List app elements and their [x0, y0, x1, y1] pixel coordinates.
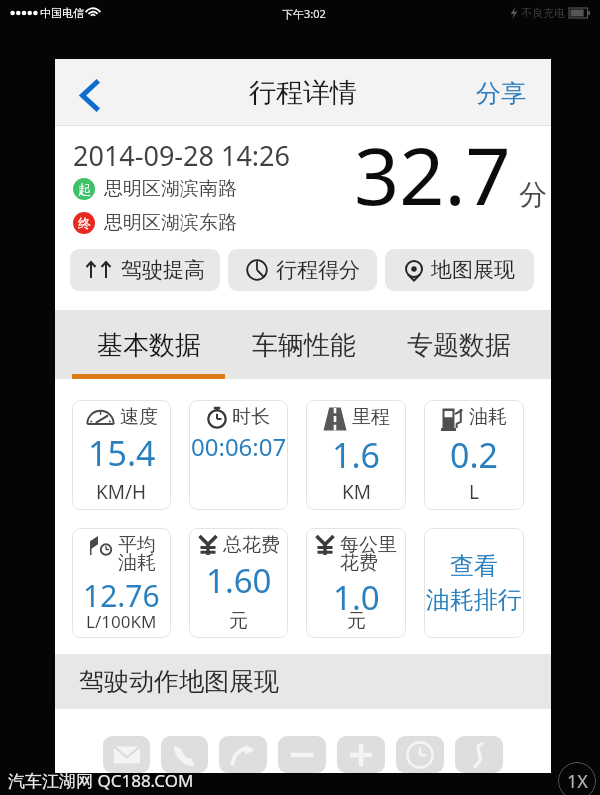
button[interactable]: Back: [67, 73, 111, 117]
button[interactable]: Minus: [278, 736, 326, 773]
staticText: 时长: [232, 405, 270, 429]
button[interactable]: Plus: [337, 736, 385, 773]
staticText: 中国电信: [40, 6, 84, 20]
button[interactable]: 驾驶提高: [70, 249, 220, 291]
staticText: 驾驶提高: [121, 257, 205, 283]
staticText: 下午3:02: [282, 6, 326, 21]
button[interactable]: 车辆性能: [226, 310, 381, 379]
staticText: 终: [78, 215, 91, 231]
staticText: 每公里 花费: [340, 533, 397, 574]
staticText: 驾驶动作地图展现: [79, 666, 279, 697]
staticText: 1X: [567, 769, 588, 794]
button[interactable]: Share: [219, 736, 267, 773]
staticText: 行程得分: [276, 257, 360, 283]
button[interactable]: 总花费: [189, 528, 288, 638]
button[interactable]: 专题数据: [381, 310, 536, 379]
staticText: 思明区湖滨东路: [104, 211, 237, 235]
button[interactable]: 分享: [468, 70, 534, 117]
staticText: 速度: [120, 405, 158, 429]
staticText: 15.4: [88, 430, 156, 476]
staticText: 元: [229, 609, 248, 633]
button[interactable]: 速度: [72, 400, 171, 510]
staticText: 00:06:07: [191, 430, 287, 463]
button[interactable]: 查看 油耗排行: [424, 528, 524, 638]
staticText: 起: [78, 181, 91, 197]
staticText: 地图展现: [431, 257, 515, 283]
button[interactable]: 里程: [306, 400, 406, 510]
staticText: 查看 油耗排行: [426, 551, 522, 616]
staticText: 元: [347, 609, 366, 633]
staticText: 总花费: [223, 533, 280, 557]
staticText: 1.0: [333, 575, 380, 620]
button[interactable]: Message: [103, 736, 150, 773]
staticText: 专题数据: [407, 329, 511, 362]
staticText: 1.6: [332, 432, 381, 478]
staticText: 0.2: [450, 432, 499, 478]
staticText: 2014-09-28 14:26: [73, 137, 290, 174]
staticText: 思明区湖滨南路: [104, 177, 237, 201]
staticText: 32.7: [354, 121, 511, 229]
button[interactable]: Clock: [396, 736, 444, 773]
staticText: 汽车江湖网 QC188.COM: [8, 769, 194, 792]
staticText: 不良充电: [521, 6, 565, 20]
staticText: L: [469, 479, 479, 505]
button[interactable]: Call: [161, 736, 208, 773]
button[interactable]: 时长: [189, 400, 288, 510]
staticText: 油耗: [469, 405, 507, 429]
staticText: 12.76: [83, 575, 160, 616]
button[interactable]: 地图展现: [385, 249, 534, 291]
staticText: KM/H: [96, 479, 147, 505]
staticText: 1.60: [206, 558, 272, 603]
button[interactable]: Curve: [455, 736, 503, 773]
button[interactable]: 平均 油耗: [72, 528, 171, 638]
button[interactable]: Zoom 1X: [558, 762, 596, 795]
staticText: 平均 油耗: [118, 533, 156, 574]
button[interactable]: 每公里 花费: [306, 528, 406, 638]
staticText: L/100KM: [86, 610, 157, 633]
button[interactable]: 行程得分: [228, 249, 377, 291]
staticText: 里程: [352, 405, 390, 429]
staticText: 分享: [476, 78, 526, 109]
staticText: 基本数据: [97, 329, 201, 362]
staticText: 行程详情: [249, 76, 357, 110]
staticText: 车辆性能: [252, 329, 356, 362]
staticText: KM: [342, 479, 371, 505]
button[interactable]: 油耗: [424, 400, 524, 510]
staticText: 分: [519, 177, 547, 212]
button[interactable]: 基本数据: [71, 310, 226, 379]
